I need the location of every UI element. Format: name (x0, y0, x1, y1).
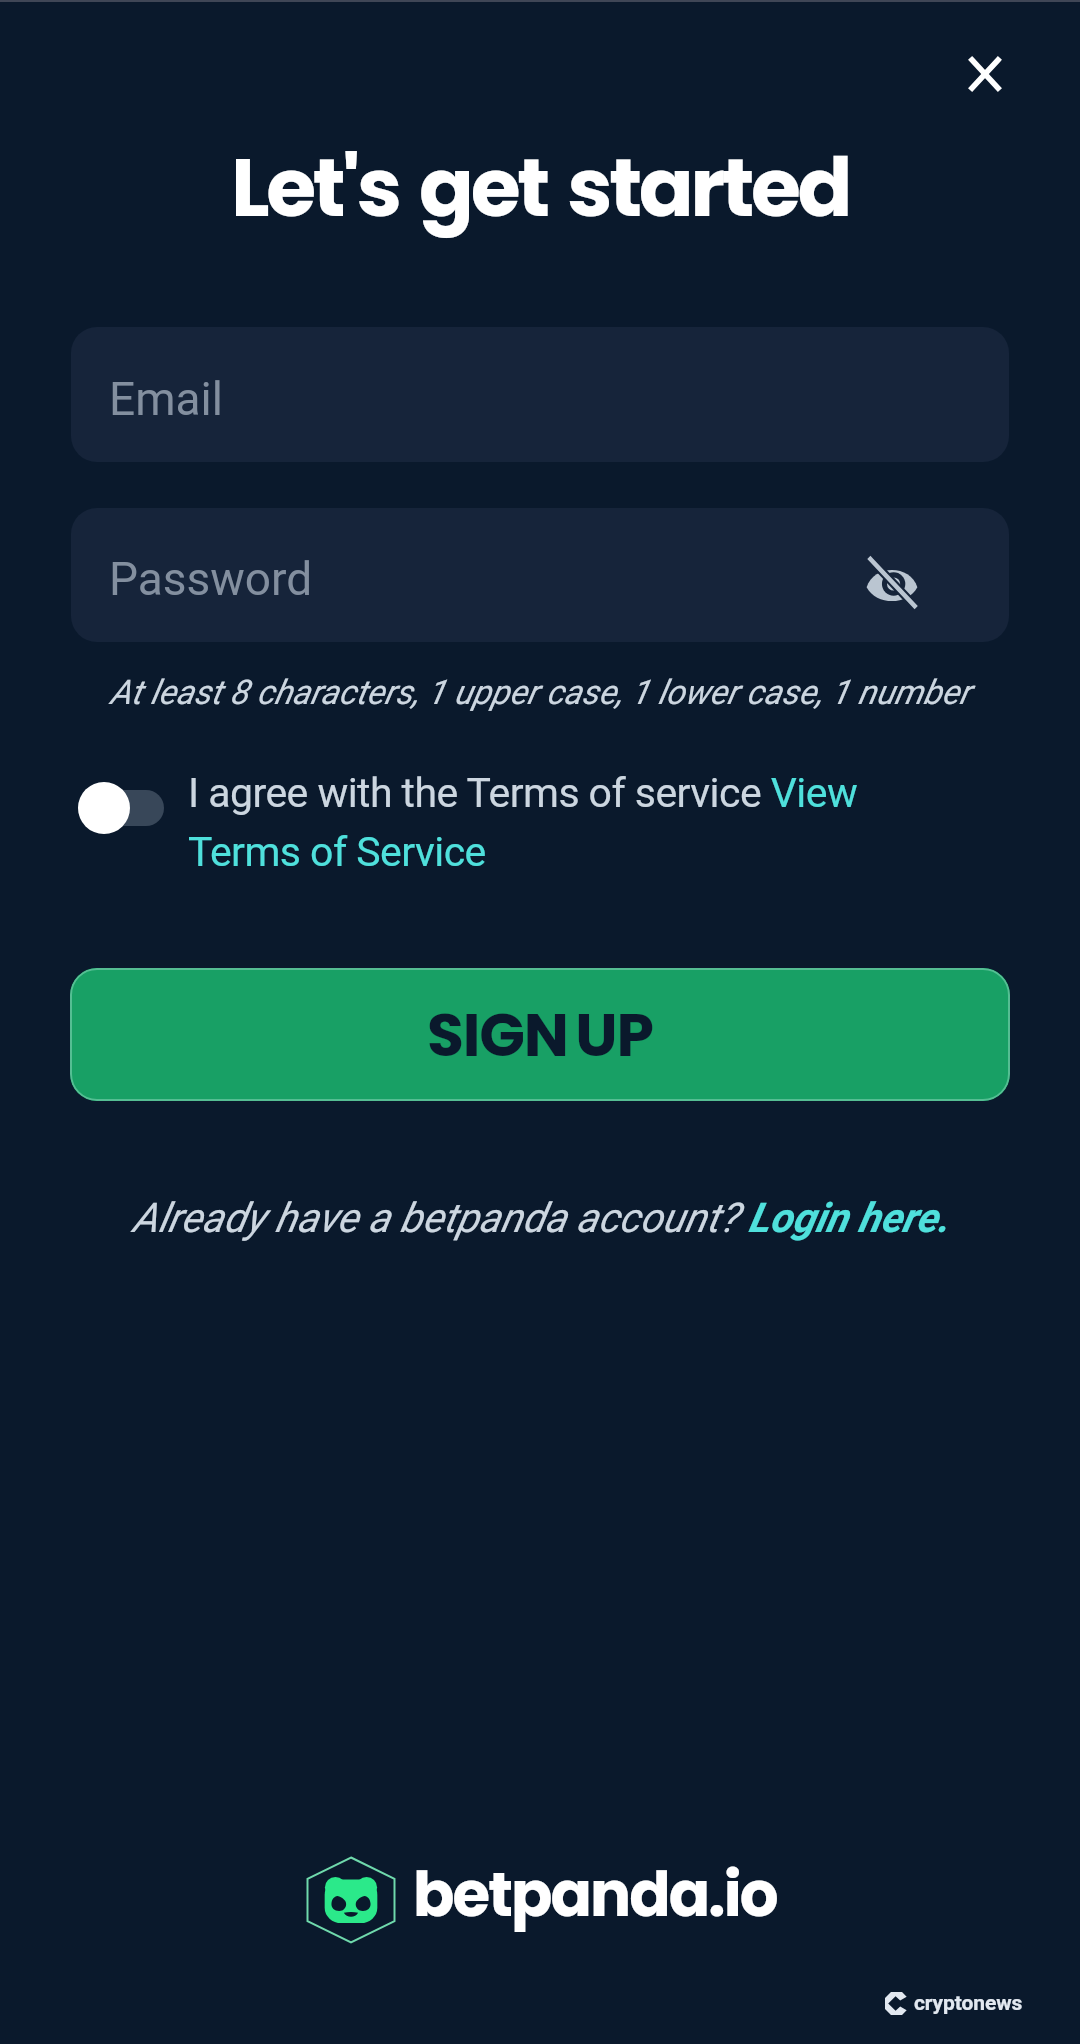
staticText: SIGN UP (427, 993, 653, 1077)
staticText: Password (109, 552, 313, 606)
staticText: Already have a betpanda account? Login h… (132, 1194, 949, 1242)
button[interactable]: Password (71, 508, 1009, 642)
staticText: Email (109, 372, 223, 426)
staticText: Let's get started (0, 131, 1080, 244)
staticText: betpanda.io (413, 1852, 777, 1937)
button[interactable]: Already have a betpanda account? Login h… (132, 1194, 949, 1242)
button[interactable]: Email (71, 327, 1009, 462)
button[interactable]: I agree with Terms of service (78, 782, 164, 834)
staticText: cryptonews (914, 1991, 1023, 2016)
staticText: I agree with the Terms of service View T… (188, 769, 888, 876)
button[interactable]: Show password (856, 546, 928, 618)
staticText: At least 8 characters, 1 upper case, 1 l… (0, 672, 1080, 712)
button[interactable]: I agree with the Terms of service View T… (188, 769, 888, 876)
button[interactable]: Close (937, 26, 1033, 122)
button[interactable]: SIGN UP (70, 968, 1010, 1101)
